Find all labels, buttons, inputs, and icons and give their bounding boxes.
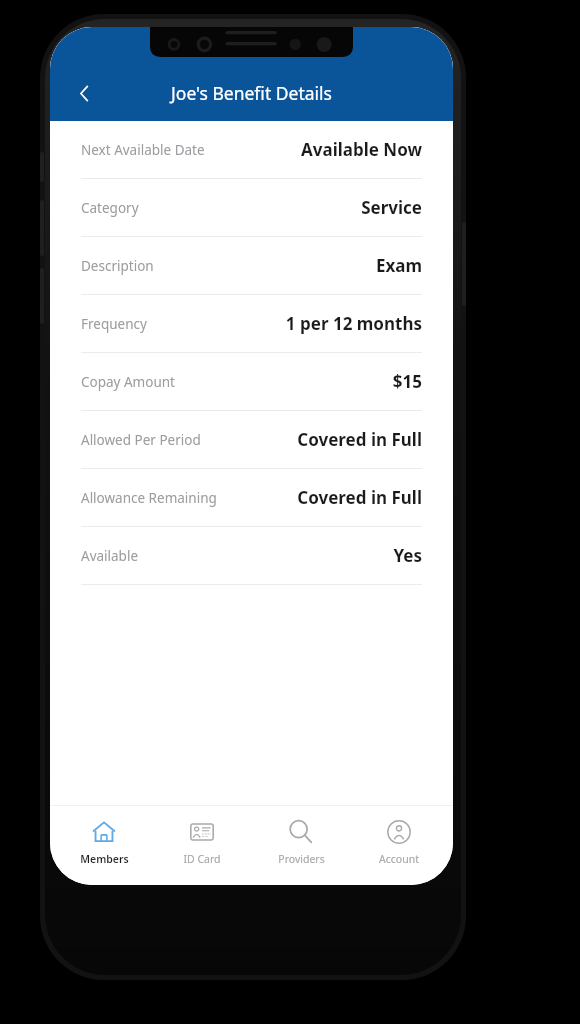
button[interactable]: Next Available Date	[50, 121, 453, 179]
staticText: Covered in Full	[297, 486, 422, 509]
button[interactable]: Category	[50, 179, 453, 237]
button[interactable]: Allowance Remaining	[50, 469, 453, 527]
staticText: Available	[81, 547, 138, 565]
staticText: Next Available Date	[81, 141, 205, 159]
staticText: Providers	[278, 852, 325, 866]
staticText: $15	[392, 370, 422, 393]
staticText: Available Now	[300, 138, 422, 161]
button[interactable]: Frequency	[50, 295, 453, 353]
staticText: Account	[379, 852, 419, 866]
button[interactable]: Members	[60, 806, 148, 866]
button[interactable]: Account	[355, 806, 443, 866]
button[interactable]: Providers	[257, 806, 345, 866]
staticText: Category	[81, 199, 139, 217]
button[interactable]: Available	[50, 527, 453, 585]
staticText: Description	[81, 257, 154, 275]
button[interactable]: ID Card	[158, 806, 246, 866]
staticText: Allowed Per Period	[81, 431, 201, 449]
staticText: ID Card	[183, 852, 221, 866]
staticText: Covered in Full	[297, 428, 422, 451]
button[interactable]: Description	[50, 237, 453, 295]
staticText: Allowance Remaining	[81, 489, 217, 507]
staticText: Joe's Benefit Details	[171, 81, 332, 105]
staticText: Yes	[393, 544, 422, 567]
button[interactable]: Copay Amount	[50, 353, 453, 411]
staticText: 1 per 12 months	[285, 312, 422, 335]
button[interactable]: Allowed Per Period	[50, 411, 453, 469]
staticText: Members	[80, 852, 129, 866]
staticText: Copay Amount	[81, 373, 175, 391]
staticText: Exam	[375, 254, 422, 277]
staticText: Service	[361, 196, 422, 219]
staticText: Frequency	[81, 315, 147, 333]
button[interactable]: Back	[61, 70, 107, 116]
